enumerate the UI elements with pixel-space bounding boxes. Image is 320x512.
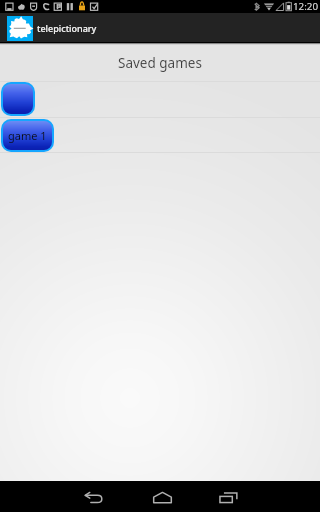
button[interactable]: Recent apps bbox=[203, 481, 253, 512]
button[interactable] bbox=[0, 82, 320, 117]
button[interactable]: Back bbox=[68, 481, 118, 512]
staticText: 12:20 bbox=[293, 0, 319, 13]
staticText: telepictionary bbox=[37, 22, 97, 34]
staticText: game 1 bbox=[8, 128, 47, 143]
staticText: Saved games bbox=[118, 54, 202, 72]
button[interactable]: Home bbox=[137, 481, 187, 512]
button[interactable]: game 1 bbox=[3, 121, 52, 150]
button[interactable]: game 1 bbox=[0, 118, 320, 152]
button[interactable] bbox=[3, 84, 33, 114]
button[interactable]: App icon bbox=[7, 16, 33, 41]
